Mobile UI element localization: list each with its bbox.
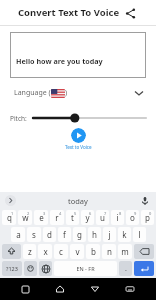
button[interactable] xyxy=(2,244,21,259)
button[interactable]: r xyxy=(50,210,64,225)
button[interactable]: ?123 xyxy=(2,261,22,276)
button[interactable]: v xyxy=(70,244,84,259)
button[interactable]: t xyxy=(66,210,79,225)
staticText: w xyxy=(22,212,29,223)
staticText: 8 xyxy=(119,211,122,216)
button[interactable]: l xyxy=(133,227,146,242)
button[interactable]: EN - FR xyxy=(54,261,117,276)
button[interactable]: s xyxy=(27,227,41,242)
button[interactable]: x xyxy=(38,244,52,259)
button[interactable]: k xyxy=(118,227,131,242)
staticText: ?123 xyxy=(6,265,18,272)
staticText: EN - FR xyxy=(76,265,95,272)
button[interactable]: e xyxy=(34,210,48,225)
staticText: n xyxy=(107,246,112,257)
staticText: 7 xyxy=(104,211,107,216)
staticText: t xyxy=(71,212,74,223)
button[interactable]: Hello how are you today xyxy=(10,32,146,78)
button[interactable]: . xyxy=(119,261,132,276)
staticText: d xyxy=(47,229,52,240)
button[interactable]: n xyxy=(102,244,116,259)
staticText: c xyxy=(59,246,63,257)
button[interactable]: c xyxy=(54,244,68,259)
staticText: i xyxy=(116,212,119,223)
button[interactable] xyxy=(134,261,154,276)
staticText: j xyxy=(108,229,111,240)
button[interactable]: i xyxy=(111,210,124,225)
staticText: Pitch: xyxy=(10,114,27,123)
button[interactable]: Text to Voice xyxy=(71,128,86,143)
staticText: h xyxy=(92,229,97,240)
button[interactable]: w xyxy=(18,210,32,225)
button[interactable]: f xyxy=(58,227,71,242)
staticText: Text to Voice xyxy=(65,144,92,150)
button[interactable]: Language ( xyxy=(0,78,156,108)
button[interactable]: b xyxy=(86,244,100,259)
button[interactable]: Hide keyboard xyxy=(123,282,137,296)
staticText: 1 xyxy=(11,211,14,216)
staticText: u xyxy=(100,212,105,223)
button[interactable] xyxy=(39,261,52,276)
staticText: l xyxy=(138,229,141,240)
staticText: 0 xyxy=(149,211,152,216)
staticText: 9 xyxy=(134,211,137,216)
staticText: Hello how are you today xyxy=(16,56,103,66)
staticText: k xyxy=(122,229,127,240)
button[interactable]: q xyxy=(2,210,16,225)
button[interactable]: Voice input xyxy=(139,195,151,207)
staticText: z xyxy=(28,246,32,257)
button[interactable]: Recent apps xyxy=(18,282,32,296)
staticText: p xyxy=(145,212,150,223)
staticText: 2 xyxy=(27,211,30,216)
button[interactable] xyxy=(33,111,146,125)
button[interactable]: p xyxy=(141,210,154,225)
staticText: y xyxy=(85,212,90,223)
staticText: g xyxy=(77,229,82,240)
staticText: o xyxy=(130,212,135,223)
button[interactable]: m xyxy=(118,244,132,259)
button[interactable]: today xyxy=(16,192,139,209)
button[interactable]: Share xyxy=(122,5,138,21)
staticText: q xyxy=(7,212,12,223)
staticText: x xyxy=(43,246,48,257)
staticText: today xyxy=(68,196,88,206)
staticText: a xyxy=(16,229,21,240)
button[interactable]: Expand toolbar xyxy=(5,195,16,206)
staticText: 4 xyxy=(59,211,62,216)
staticText: e xyxy=(39,212,44,223)
button[interactable]: Home xyxy=(53,282,67,296)
button[interactable]: u xyxy=(96,210,109,225)
button[interactable]: z xyxy=(23,244,36,259)
button[interactable]: o xyxy=(126,210,139,225)
button[interactable]: g xyxy=(73,227,86,242)
staticText: 6 xyxy=(89,211,92,216)
staticText: s xyxy=(32,229,36,240)
button[interactable] xyxy=(24,261,37,276)
button[interactable]: h xyxy=(88,227,101,242)
button[interactable]: j xyxy=(103,227,116,242)
staticText: Convert Text To Voice xyxy=(18,6,120,19)
staticText: 5 xyxy=(74,211,77,216)
button[interactable]: y xyxy=(81,210,94,225)
staticText: f xyxy=(63,229,66,240)
staticText: m xyxy=(121,246,129,257)
staticText: v xyxy=(75,246,80,257)
staticText: . xyxy=(125,264,127,274)
button[interactable]: d xyxy=(43,227,56,242)
button[interactable]: Back xyxy=(88,282,102,296)
staticText: 3 xyxy=(43,211,46,216)
staticText: Language ( xyxy=(14,88,51,98)
staticText: ) xyxy=(65,88,68,98)
staticText: r xyxy=(55,212,59,223)
staticText: b xyxy=(91,246,96,257)
button[interactable]: a xyxy=(11,227,25,242)
button[interactable] xyxy=(134,244,154,259)
